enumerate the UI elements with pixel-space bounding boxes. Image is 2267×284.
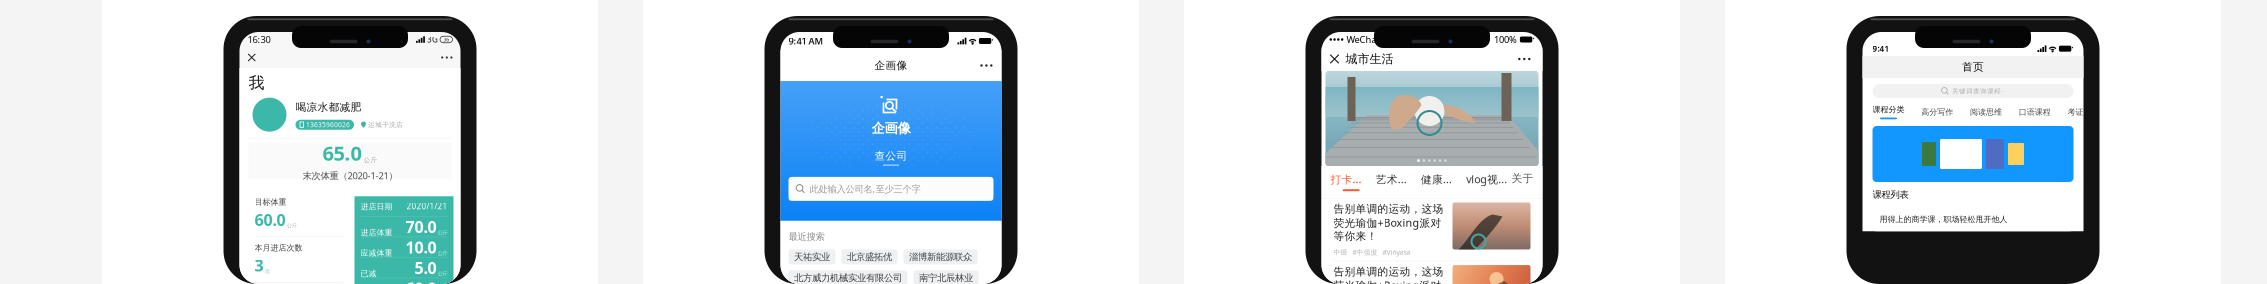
- button[interactable]: 北方威力机械实业有限公司: [788, 270, 907, 284]
- staticText: 运城干洗店: [368, 121, 403, 129]
- staticText: 关于: [1511, 172, 1533, 185]
- staticText: 60.0: [254, 209, 285, 230]
- staticText: #中强度: [1352, 248, 1377, 257]
- button[interactable]: 艺术文化: [1376, 172, 1417, 186]
- staticText: 2020/1/21: [406, 201, 447, 211]
- staticText: 5.0: [414, 257, 436, 278]
- staticText: 最近搜索: [788, 231, 824, 242]
- staticText: 首页: [1962, 60, 1984, 73]
- button[interactable]: 打卡圣地: [1330, 172, 1372, 191]
- button[interactable]: 南宁北辰林业: [913, 270, 978, 284]
- staticText: 65.0: [322, 140, 361, 166]
- staticText: 10.0: [405, 237, 436, 258]
- staticText: 13635960026: [306, 120, 350, 129]
- button[interactable]: 告别单调的运动，这场荧光瑜伽+Boxing派对等你来！: [1321, 199, 1542, 261]
- staticText: 天祐实业: [794, 251, 830, 263]
- staticText: 公斤: [437, 250, 447, 256]
- staticText: 查公司: [874, 149, 907, 162]
- staticText: 口语课程: [2019, 107, 2051, 117]
- staticText: WeChat: [1346, 33, 1379, 46]
- staticText: vlog视频: [1466, 172, 1507, 186]
- button[interactable]: 天祐实业: [788, 249, 835, 264]
- button[interactable]: More: [976, 60, 996, 71]
- staticText: 考证: [2067, 107, 2083, 117]
- staticText: 高分写作: [1921, 107, 1953, 117]
- staticText: 9:41 AM: [788, 35, 823, 47]
- staticText: 本月进店次数: [254, 243, 302, 253]
- staticText: 淄博新能源联众: [909, 251, 972, 263]
- staticText: 中级: [1333, 248, 1347, 256]
- staticText: 艺术文化: [1376, 172, 1417, 186]
- staticText: 应减体重: [360, 248, 392, 258]
- button[interactable]: 淄博新能源联众: [903, 249, 977, 264]
- button[interactable]: vlog视频: [1466, 172, 1507, 186]
- staticText: 南宁北辰林业: [919, 272, 973, 284]
- staticText: 公斤: [287, 222, 297, 229]
- staticText: 公斤: [363, 156, 377, 164]
- staticText: 次: [265, 268, 270, 275]
- staticText: 阅读思维: [1970, 107, 2002, 117]
- staticText: 北方威力机械实业有限公司: [794, 272, 902, 284]
- staticText: 9:41: [1872, 43, 1889, 54]
- staticText: #Vinyasa: [1382, 248, 1410, 257]
- staticText: 进店体重: [360, 228, 392, 237]
- staticText: 36: [443, 36, 449, 43]
- staticText: 3: [254, 255, 263, 276]
- staticText: 城市生活: [1345, 52, 1393, 66]
- staticText: 3G: [427, 34, 438, 45]
- button[interactable]: More: [1514, 54, 1534, 64]
- staticText: 100%: [1494, 33, 1517, 46]
- staticText: 企画像: [874, 59, 907, 72]
- staticText: 北京盛拓优: [847, 251, 892, 263]
- staticText: 打卡圣地: [1330, 172, 1372, 186]
- staticText: 70.0: [405, 216, 436, 237]
- staticText: 目标体重: [254, 197, 286, 207]
- staticText: 已减: [360, 269, 376, 278]
- button[interactable]: 关于: [1511, 172, 1533, 185]
- staticText: 喝凉水都减肥: [295, 101, 361, 114]
- button[interactable]: 城市生活: [1329, 52, 1393, 66]
- staticText: 课程分类: [1872, 105, 1904, 114]
- staticText: 告别单调的运动，这场荧光瑜伽+Boxing派对等你来！: [1333, 202, 1443, 243]
- staticText: 16:30: [247, 33, 270, 46]
- staticText: 此处输入公司名,至少三个字: [809, 183, 920, 195]
- staticText: 进店日期: [360, 202, 392, 211]
- staticText: 公斤: [437, 270, 447, 277]
- button[interactable]: More: [437, 52, 456, 63]
- staticText: 60.0: [405, 278, 436, 284]
- staticText: 用得上的商学课，职场轻松甩开他人: [1879, 214, 2007, 224]
- button[interactable]: Close: [243, 49, 260, 66]
- staticText: 公斤: [437, 229, 447, 236]
- button[interactable]: 北京盛拓优: [841, 249, 897, 264]
- staticText: 告别单调的运动，这场荧光瑜伽+Boxing派对等你来！: [1333, 265, 1443, 284]
- staticText: 我: [248, 73, 264, 93]
- staticText: 健康轻食: [1421, 172, 1462, 186]
- staticText: 课程列表: [1872, 189, 1908, 200]
- staticText: 关键词查询课程~: [1952, 87, 2005, 95]
- staticText: 企画像: [871, 120, 910, 136]
- button[interactable]: 健康轻食: [1421, 172, 1462, 186]
- button[interactable]: 告别单调的运动，这场荧光瑜伽+Boxing派对等你来！: [1321, 261, 1542, 284]
- staticText: 末次体重（2020-1-21）: [302, 169, 397, 182]
